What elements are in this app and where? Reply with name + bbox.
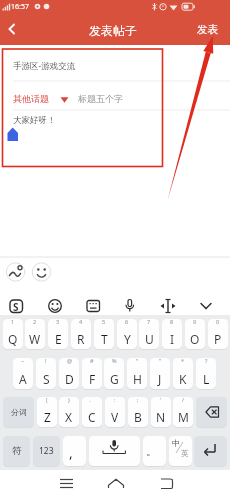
button[interactable] bbox=[194, 436, 227, 466]
staticText: 、 bbox=[89, 397, 95, 403]
staticText: 中 bbox=[172, 438, 180, 448]
button[interactable]: # bbox=[82, 358, 102, 389]
button[interactable] bbox=[45, 296, 65, 316]
staticText: ? bbox=[205, 358, 208, 364]
button[interactable]: 2 bbox=[25, 319, 45, 349]
button[interactable]: 3 bbox=[48, 319, 68, 349]
staticText: 英 bbox=[181, 449, 189, 458]
button[interactable]: ! bbox=[36, 358, 56, 389]
button[interactable]: 、 bbox=[82, 397, 102, 427]
staticText: ' bbox=[160, 397, 162, 403]
button[interactable] bbox=[196, 397, 227, 427]
button[interactable] bbox=[89, 436, 140, 466]
button[interactable] bbox=[54, 472, 80, 496]
button[interactable] bbox=[6, 296, 26, 316]
button[interactable]: ( bbox=[37, 397, 57, 427]
button[interactable]: , bbox=[63, 436, 86, 466]
button[interactable]: ~ bbox=[13, 358, 33, 389]
button[interactable]: “ bbox=[127, 358, 147, 389]
staticText: U bbox=[145, 331, 154, 347]
staticText: Q bbox=[8, 331, 18, 347]
staticText: 0 bbox=[216, 319, 220, 325]
staticText: ” bbox=[159, 358, 161, 364]
staticText: R bbox=[77, 331, 85, 347]
staticText: 6 bbox=[125, 319, 129, 325]
button[interactable] bbox=[158, 296, 178, 316]
button[interactable]: 8 bbox=[162, 319, 182, 349]
staticText: E bbox=[55, 331, 62, 347]
button[interactable] bbox=[196, 296, 216, 316]
button[interactable]: 5 bbox=[94, 319, 114, 349]
staticText: 2 bbox=[33, 319, 37, 325]
button[interactable]: 4 bbox=[71, 319, 91, 349]
staticText: 123 bbox=[39, 445, 54, 457]
staticText: 其他话题 bbox=[13, 93, 49, 104]
staticText: 手游区-游戏交流 bbox=[13, 60, 76, 72]
staticText: 发表帖子 bbox=[89, 23, 137, 38]
button[interactable]: ' bbox=[151, 397, 171, 427]
button[interactable]: ; bbox=[128, 397, 148, 427]
button[interactable]: 1 bbox=[3, 319, 23, 349]
button[interactable] bbox=[4, 261, 27, 283]
staticText: % bbox=[112, 358, 117, 364]
staticText: # bbox=[90, 358, 94, 364]
button[interactable] bbox=[30, 261, 53, 283]
staticText: 分词 bbox=[11, 407, 27, 417]
staticText: 7 bbox=[147, 319, 151, 325]
button[interactable] bbox=[120, 296, 140, 316]
button[interactable]: 发表 bbox=[192, 20, 226, 40]
staticText: S bbox=[13, 300, 19, 314]
staticText: ( bbox=[46, 397, 48, 403]
staticText: G bbox=[110, 371, 119, 387]
staticText: ! bbox=[45, 358, 47, 364]
staticText: ; bbox=[137, 397, 139, 403]
button[interactable] bbox=[4, 20, 22, 38]
staticText: : bbox=[114, 397, 116, 403]
staticText: 大家好呀！ bbox=[13, 115, 56, 126]
staticText: A bbox=[19, 371, 27, 387]
button[interactable]: * bbox=[173, 358, 193, 389]
button[interactable]: ” bbox=[150, 358, 170, 389]
button[interactable]: 7 bbox=[139, 319, 159, 349]
button[interactable]: 中 bbox=[169, 436, 192, 466]
staticText: X bbox=[65, 409, 73, 425]
staticText: I bbox=[170, 331, 175, 347]
button[interactable] bbox=[155, 472, 181, 496]
staticText: W bbox=[29, 331, 41, 347]
button[interactable]: / bbox=[173, 397, 193, 427]
staticText: O bbox=[190, 331, 200, 347]
button[interactable]: @ bbox=[59, 358, 79, 389]
staticText: S bbox=[43, 371, 50, 387]
staticText: T bbox=[101, 331, 108, 347]
button[interactable]: 9 bbox=[185, 319, 205, 349]
staticText: 4 bbox=[79, 319, 83, 325]
staticText: 3 bbox=[56, 319, 60, 325]
staticText: 16:57 bbox=[11, 2, 29, 12]
button[interactable]: 。 bbox=[143, 436, 166, 466]
button[interactable]: 123 bbox=[33, 436, 60, 466]
staticText: K bbox=[179, 371, 187, 387]
button[interactable] bbox=[103, 472, 129, 496]
staticText: ) bbox=[68, 397, 70, 403]
staticText: Z bbox=[44, 409, 51, 425]
staticText: Y bbox=[124, 331, 131, 347]
button[interactable]: ) bbox=[59, 397, 79, 427]
staticText: D bbox=[65, 371, 74, 387]
staticText: 9 bbox=[193, 319, 197, 325]
button[interactable] bbox=[83, 296, 103, 316]
staticText: 标题五个字 bbox=[78, 93, 123, 104]
staticText: H bbox=[133, 371, 142, 387]
button[interactable]: 0 bbox=[208, 319, 228, 349]
staticText: 8 bbox=[170, 319, 174, 325]
button[interactable]: % bbox=[104, 358, 124, 389]
button[interactable]: 分词 bbox=[3, 397, 34, 427]
staticText: C bbox=[88, 409, 96, 425]
staticText: 发表 bbox=[197, 23, 218, 36]
button[interactable]: : bbox=[105, 397, 125, 427]
button[interactable]: ? bbox=[196, 358, 216, 389]
button[interactable]: 6 bbox=[117, 319, 137, 349]
staticText: P bbox=[214, 331, 222, 347]
button[interactable]: 符 bbox=[3, 436, 30, 466]
staticText: 1 bbox=[11, 319, 15, 325]
staticText: M bbox=[178, 409, 189, 425]
